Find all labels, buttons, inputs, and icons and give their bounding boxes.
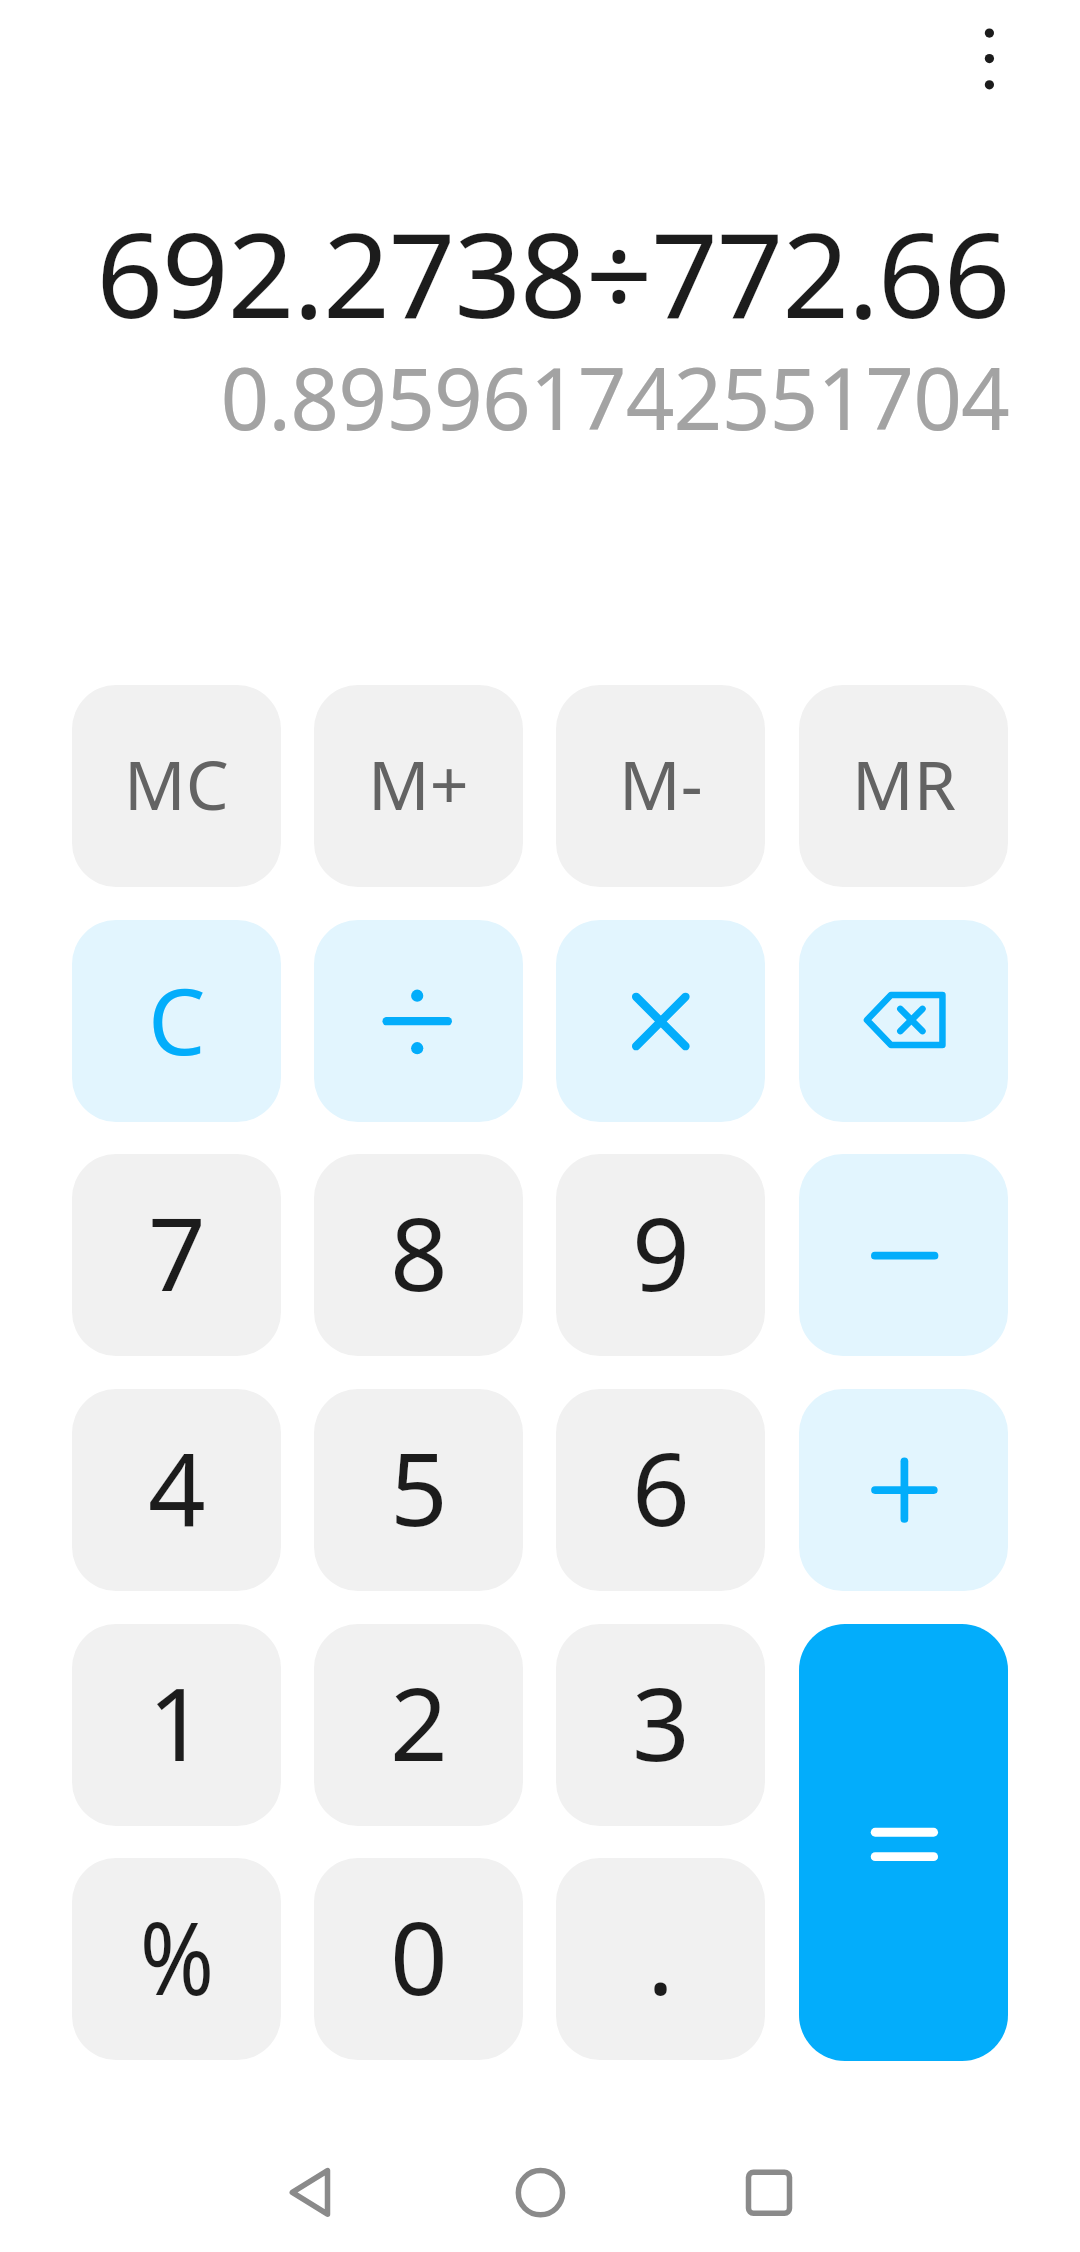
staticText: . [647,1887,675,2025]
button[interactable]: Multiply [556,920,765,1122]
button[interactable]: M- [556,685,765,887]
staticText: 692.2738÷772.66 [96,193,1009,353]
button[interactable]: . [556,1858,765,2060]
button[interactable]: M+ [314,685,523,887]
staticText: MR [852,737,956,830]
button[interactable]: More options [941,10,1038,108]
staticText: C [148,958,206,1082]
staticText: 0.895961742551704 [220,339,1009,455]
button[interactable]: 4 [72,1389,281,1591]
button[interactable]: Home [480,2142,601,2243]
button[interactable]: 0 [314,1858,523,2060]
staticText: 7 [148,1183,206,1321]
staticText: 4 [148,1418,206,1556]
button[interactable]: Recents [709,2142,830,2243]
button[interactable]: 1 [72,1624,281,1826]
button[interactable]: C [72,920,281,1122]
button[interactable]: Backspace [799,920,1008,1122]
button[interactable]: Plus [799,1389,1008,1591]
button[interactable]: % [72,1858,281,2060]
button[interactable]: Minus [799,1154,1008,1356]
button[interactable]: 9 [556,1154,765,1356]
staticText: 5 [390,1418,448,1556]
staticText: 6 [632,1418,690,1556]
staticText: 9 [632,1183,690,1321]
staticText: 0 [390,1887,448,2025]
button[interactable]: 7 [72,1154,281,1356]
button[interactable]: Equals [799,1624,1008,2061]
button[interactable]: 6 [556,1389,765,1591]
button[interactable]: 5 [314,1389,523,1591]
button[interactable]: 2 [314,1624,523,1826]
staticText: 1 [148,1653,206,1791]
staticText: 8 [390,1183,448,1321]
staticText: M- [619,737,703,830]
button[interactable]: MR [799,685,1008,887]
button[interactable]: Divide [314,920,523,1122]
button[interactable]: 8 [314,1154,523,1356]
staticText: 2 [390,1653,448,1791]
button[interactable]: Back [248,2142,369,2243]
staticText: 3 [632,1653,690,1791]
staticText: M+ [368,737,469,830]
staticText: MC [124,737,229,830]
button[interactable]: 3 [556,1624,765,1826]
staticText: % [140,1887,214,2025]
button[interactable]: MC [72,685,281,887]
